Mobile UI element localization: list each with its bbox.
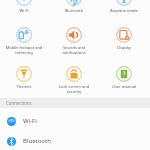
staticText: Lock screen and security — [52, 84, 96, 94]
button[interactable]: Display — [99, 27, 149, 65]
staticText: Airplane mode — [102, 8, 146, 13]
staticText: Display — [102, 45, 146, 50]
button[interactable]: Mobile hotspot and tethering — [0, 27, 49, 65]
staticText: Mobile hotspot and tethering — [2, 45, 46, 55]
staticText: Bluetooth — [23, 137, 51, 145]
staticText: Bluetooth — [52, 8, 96, 13]
button[interactable]: Lock screen and security — [49, 66, 99, 104]
button[interactable]: Bluetooth — [0, 131, 150, 150]
staticText: Connections — [6, 100, 32, 106]
staticText: Themes — [2, 84, 46, 89]
staticText: Sounds and notifications — [52, 45, 96, 55]
staticText: User manual — [102, 84, 146, 89]
staticText: Wi-Fi — [23, 117, 37, 125]
button[interactable]: Wi-Fi — [0, 111, 150, 131]
button[interactable]: Bluetooth — [49, 0, 99, 28]
button[interactable]: Themes — [0, 66, 49, 104]
button[interactable]: Airplane mode — [99, 0, 149, 28]
staticText: Wi-Fi — [2, 8, 46, 13]
button[interactable]: Sounds and notifications — [49, 27, 99, 65]
button[interactable]: Wi-Fi — [0, 0, 49, 28]
button[interactable]: User manual — [99, 66, 149, 104]
